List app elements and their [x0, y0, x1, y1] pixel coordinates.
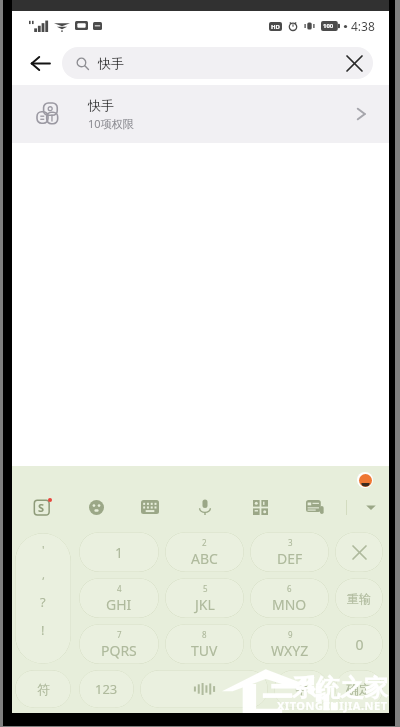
staticText: 5: [203, 583, 208, 594]
staticText: ': [42, 542, 45, 557]
button[interactable]: 快手: [62, 47, 373, 79]
staticText: 系统之家: [292, 673, 388, 703]
staticText: 4:38: [351, 18, 375, 34]
button[interactable]: 123: [79, 670, 134, 708]
staticText: 中: [295, 681, 308, 697]
staticText: 1: [115, 543, 124, 562]
button[interactable]: Voice input: [191, 494, 219, 520]
staticText: XITONGZHIJIA.NET: [277, 698, 388, 713]
staticText: 2: [202, 537, 207, 548]
button[interactable]: Sogou menu: [28, 494, 56, 520]
staticText: 确定: [346, 681, 372, 697]
button[interactable]: 8 TUV: [165, 624, 244, 664]
staticText: 0: [355, 635, 364, 654]
button[interactable]: 0: [335, 624, 383, 664]
button[interactable]: Keyboard: [136, 494, 164, 520]
button[interactable]: ×: [335, 532, 383, 572]
staticText: 9: [288, 629, 293, 640]
staticText: 123: [95, 680, 118, 698]
button[interactable]: 快手: [12, 85, 389, 143]
button[interactable]: 5 JKL: [165, 578, 244, 618]
staticText: 重输: [347, 591, 371, 606]
button[interactable]: 中: [274, 670, 329, 708]
button[interactable]: Account: [357, 472, 373, 488]
staticText: ABC: [191, 549, 218, 568]
button[interactable]: 3 DEF: [250, 532, 329, 572]
staticText: GHI: [106, 595, 132, 614]
staticText: 4: [117, 583, 122, 594]
staticText: !: [41, 621, 45, 639]
button[interactable]: 重输: [335, 578, 383, 618]
staticText: WXYZ: [271, 641, 309, 660]
button[interactable]: 符: [15, 670, 71, 708]
button[interactable]: Clipboard: [301, 494, 329, 520]
staticText: 3: [288, 537, 293, 548]
button[interactable]: 1: [79, 532, 159, 572]
staticText: 100: [323, 22, 334, 30]
button[interactable]: 6 MNO: [250, 578, 329, 618]
staticText: 7: [117, 629, 122, 640]
button[interactable]: Back: [20, 43, 60, 83]
button[interactable]: 4 GHI: [79, 578, 159, 618]
staticText: 10项权限: [88, 116, 134, 131]
staticText: DEF: [277, 549, 303, 568]
staticText: 8: [202, 629, 207, 640]
button[interactable]: Space: [140, 670, 268, 708]
button[interactable]: 7 PQRS: [79, 624, 159, 664]
staticText: TUV: [191, 641, 218, 660]
staticText: 快手: [98, 55, 124, 71]
button[interactable]: 9 WXYZ: [250, 624, 329, 664]
staticText: S: [38, 500, 45, 515]
staticText: HD: [271, 23, 280, 31]
button[interactable]: Clear search: [341, 47, 368, 79]
staticText: MNO: [272, 595, 307, 614]
staticText: 符: [37, 681, 50, 697]
button[interactable]: Hide keyboard: [357, 494, 385, 520]
staticText: 快手: [88, 97, 114, 113]
staticText: ?: [40, 593, 46, 611]
staticText: 6: [287, 583, 292, 594]
button[interactable]: Enter: [335, 670, 383, 708]
staticText: JKL: [195, 595, 215, 614]
button[interactable]: Scan: [246, 494, 274, 520]
button[interactable]: 2 ABC: [165, 532, 244, 572]
button[interactable]: Symbols: [15, 533, 71, 664]
button[interactable]: Emoji: [82, 494, 110, 520]
staticText: ,: [42, 567, 45, 582]
staticText: PQRS: [101, 641, 137, 660]
